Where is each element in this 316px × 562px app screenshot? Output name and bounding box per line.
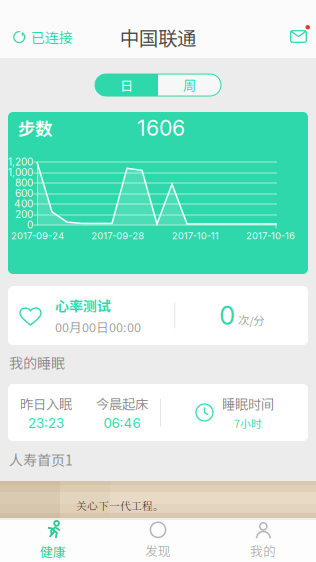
staticText: 步数	[18, 115, 52, 141]
button[interactable]: 昨日入眠	[8, 384, 308, 441]
staticText: 中国联通	[120, 23, 196, 51]
staticText: 200	[15, 208, 33, 220]
staticText: 我的	[250, 541, 276, 560]
staticText: 1606	[137, 115, 185, 141]
staticText: 睡眠时间	[222, 394, 274, 413]
staticText: 0	[219, 300, 235, 331]
staticText: 23:23	[28, 415, 64, 431]
staticText: 2017-10-16	[246, 230, 295, 242]
staticText: 发现	[145, 541, 171, 560]
button[interactable]: 已连接	[0, 16, 81, 58]
button[interactable]: 我的	[211, 519, 316, 562]
staticText: 1,200	[8, 156, 33, 168]
button[interactable]: Messages	[276, 16, 316, 58]
staticText: 我的睡眠	[9, 352, 65, 373]
staticText: 0	[27, 219, 33, 231]
staticText: 06:46	[103, 415, 140, 431]
button[interactable]: 健康	[0, 519, 105, 562]
staticText: 800	[15, 177, 33, 189]
staticText: 昨日入眠	[20, 394, 72, 413]
staticText: 2017-10-11	[172, 230, 219, 242]
button[interactable]: 发现	[105, 519, 211, 562]
staticText: 关心下一代工程。	[76, 498, 164, 513]
staticText: 次/分	[238, 312, 264, 328]
staticText: 心率测试	[55, 295, 111, 315]
button[interactable]: 周	[158, 74, 221, 96]
staticText: 2017-09-28	[91, 230, 144, 242]
staticText: 人寿首页1	[9, 449, 73, 470]
staticText: 今晨起床	[96, 394, 148, 413]
staticText: 400	[14, 198, 33, 210]
staticText: 日	[120, 75, 133, 95]
staticText: 周	[183, 75, 196, 95]
staticText: 7小时	[234, 415, 262, 431]
staticText: 健康	[40, 542, 66, 561]
staticText: 2017-09-24	[11, 230, 64, 242]
button[interactable]: 心率测试	[8, 286, 308, 345]
staticText: 已连接	[31, 27, 73, 47]
staticText: 1,000	[8, 166, 33, 178]
button[interactable]: 日	[95, 74, 158, 96]
staticText: 00月00日00:00	[55, 317, 141, 336]
staticText: 600	[15, 187, 33, 199]
button[interactable]: 人寿首页1 banner	[0, 481, 316, 518]
